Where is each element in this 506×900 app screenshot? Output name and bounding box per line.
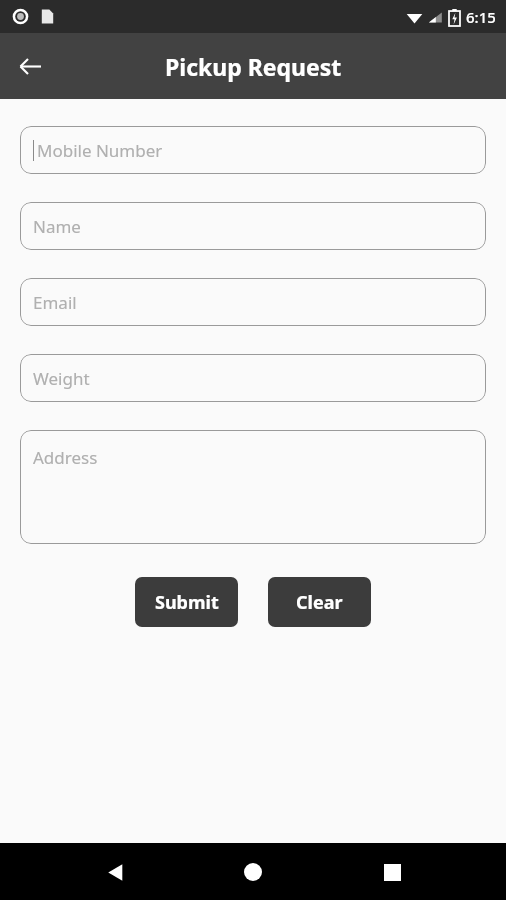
staticText: Name [33,215,81,238]
staticText: Clear [296,590,343,615]
button[interactable]: Back [91,848,139,896]
button[interactable]: Recent apps [368,848,416,896]
button[interactable]: Email [20,278,486,326]
staticText: 6:15 [466,7,496,27]
staticText: Pickup Request [165,51,342,82]
button[interactable]: Back [8,44,52,88]
button[interactable]: Clear [268,577,371,627]
staticText: Submit [155,590,219,615]
button[interactable]: Submit [135,577,238,627]
staticText: Mobile Number [37,139,163,162]
button[interactable]: Name [20,202,486,250]
staticText: Address [33,446,98,469]
button[interactable]: Address [20,430,486,544]
staticText: Email [33,291,77,314]
button[interactable]: Home [229,848,277,896]
button[interactable]: Mobile Number [20,126,486,174]
button[interactable]: Weight [20,354,486,402]
staticText: Weight [33,367,90,390]
